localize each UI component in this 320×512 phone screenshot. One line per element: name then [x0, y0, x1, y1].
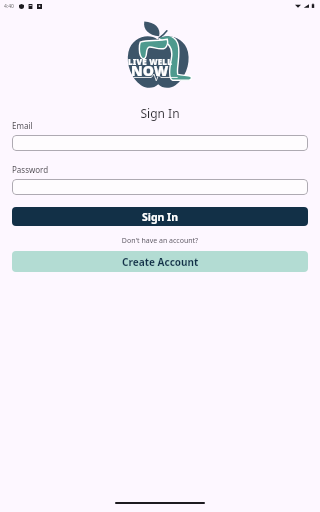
staticText: Email [12, 120, 33, 131]
button[interactable] [12, 179, 308, 195]
staticText: Sign In [142, 210, 179, 224]
staticText: NOW [131, 61, 169, 80]
staticText: Sign In [0, 105, 320, 121]
staticText: LIVE WELL [128, 56, 173, 67]
staticText: 4:40 [4, 3, 14, 10]
button[interactable]: Create Account [12, 251, 308, 272]
button[interactable] [12, 135, 308, 151]
staticText: Password [12, 164, 49, 175]
staticText: Create Account [122, 255, 199, 269]
staticText: Don't have an account? [0, 236, 320, 246]
button[interactable]: Sign In [12, 207, 308, 226]
